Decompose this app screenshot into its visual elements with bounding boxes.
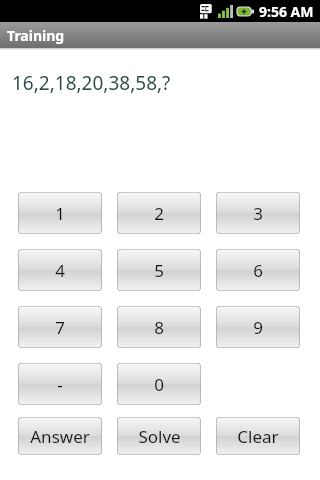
button[interactable]: 5 <box>117 249 201 291</box>
staticText: 9 <box>253 316 263 339</box>
button[interactable]: 8 <box>117 306 201 348</box>
button[interactable]: - <box>18 363 102 405</box>
staticText: 6 <box>253 259 263 282</box>
staticText: Answer <box>30 425 90 448</box>
staticText: Clear <box>237 425 279 448</box>
staticText: 7 <box>55 316 65 339</box>
staticText: 4 <box>55 259 65 282</box>
button[interactable]: 3 <box>216 192 300 234</box>
staticText: 9:56 AM <box>259 2 314 21</box>
button[interactable]: 2 <box>117 192 201 234</box>
button[interactable]: 6 <box>216 249 300 291</box>
other: Signal <box>218 5 233 18</box>
button[interactable]: Solve <box>117 417 201 455</box>
staticText: 2 <box>154 202 164 225</box>
other: 3G <box>200 4 215 19</box>
staticText: 5 <box>154 259 164 282</box>
staticText: - <box>57 373 63 396</box>
button[interactable]: 0 <box>117 363 201 405</box>
staticText: 8 <box>154 316 164 339</box>
staticText: 1 <box>55 202 65 225</box>
button[interactable]: 7 <box>18 306 102 348</box>
staticText: Training <box>7 26 65 45</box>
staticText: 16,2,18,20,38,58,? <box>12 70 171 96</box>
other: Battery charging <box>237 5 254 18</box>
button[interactable]: 9 <box>216 306 300 348</box>
button[interactable]: 4 <box>18 249 102 291</box>
button[interactable]: Clear <box>216 417 300 455</box>
staticText: 3 <box>253 202 263 225</box>
staticText: 0 <box>154 373 164 396</box>
staticText: Solve <box>138 425 181 448</box>
button[interactable]: Answer <box>18 417 102 455</box>
button[interactable]: 1 <box>18 192 102 234</box>
